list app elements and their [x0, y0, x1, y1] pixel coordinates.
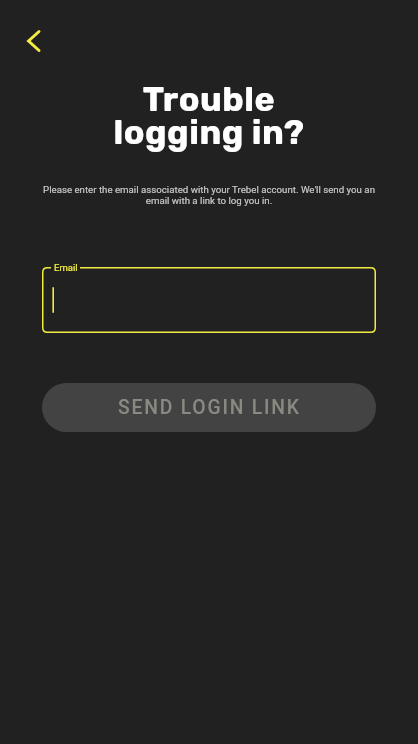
staticText: Please enter the email associated with y… — [40, 184, 378, 206]
button[interactable]: SEND LOGIN LINK — [42, 383, 376, 432]
staticText: SEND LOGIN LINK — [118, 396, 301, 419]
button[interactable]: Email — [42, 267, 376, 333]
staticText: Trouble logging in? — [113, 79, 305, 152]
button[interactable]: Back — [11, 19, 55, 63]
staticText: Email — [54, 262, 78, 273]
